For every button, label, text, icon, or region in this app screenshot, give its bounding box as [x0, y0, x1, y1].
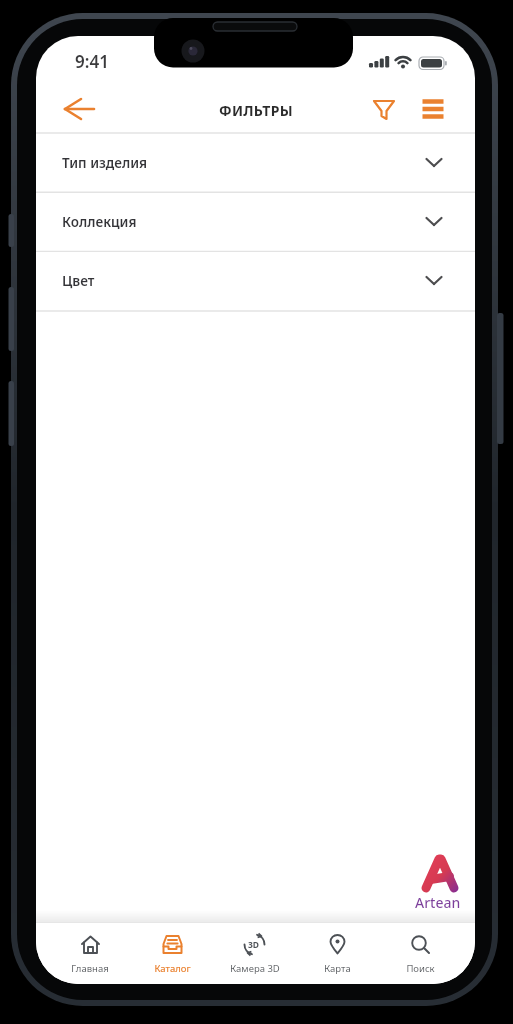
button[interactable] — [54, 92, 98, 128]
staticText: Цвет — [62, 272, 95, 290]
button[interactable]: Поиск — [379, 923, 462, 984]
button[interactable] — [366, 92, 402, 128]
staticText: Каталог — [154, 962, 191, 975]
button[interactable]: 3D — [213, 923, 296, 984]
button[interactable]: Карта — [296, 923, 379, 984]
staticText: ФИЛЬТРЫ — [219, 101, 293, 120]
button[interactable]: Тип изделия — [36, 133, 475, 192]
staticText: Artean — [415, 893, 461, 912]
button[interactable]: Цвет — [36, 251, 475, 310]
staticText: Камера 3D — [230, 962, 280, 975]
staticText: 9:41 — [75, 50, 109, 73]
button[interactable]: Главная — [49, 923, 131, 984]
staticText: 3D — [248, 939, 260, 951]
staticText: Карта — [324, 962, 351, 975]
staticText: Тип изделия — [62, 154, 148, 172]
staticText: Коллекция — [62, 213, 137, 231]
button[interactable] — [414, 92, 450, 128]
staticText: Главная — [71, 962, 109, 975]
staticText: Поиск — [406, 962, 435, 975]
button[interactable]: Каталог — [131, 923, 213, 984]
button[interactable]: Коллекция — [36, 192, 475, 251]
